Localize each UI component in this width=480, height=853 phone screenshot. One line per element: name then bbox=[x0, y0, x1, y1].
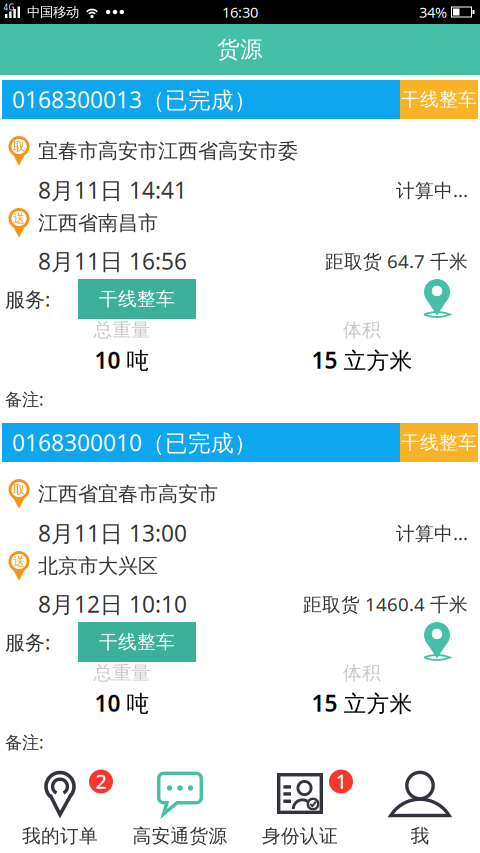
staticText: 北京市大兴区 bbox=[38, 554, 158, 578]
staticText: 体积 bbox=[343, 318, 381, 341]
staticText: 身份认证 bbox=[262, 824, 338, 847]
staticText: 8月12日 10:10 bbox=[38, 589, 187, 619]
staticText: 取 bbox=[13, 482, 25, 497]
staticText: 总重量 bbox=[93, 661, 150, 684]
staticText: 江西省宜春市高安市 bbox=[38, 482, 218, 506]
staticText: 高安通货源 bbox=[132, 824, 227, 847]
staticText: 10 吨 bbox=[94, 688, 149, 718]
staticText: 0168300010（已完成） bbox=[12, 427, 257, 457]
staticText: 送 bbox=[13, 554, 25, 569]
staticText: 备注: bbox=[5, 730, 44, 753]
staticText: 8月11日 16:56 bbox=[38, 246, 187, 276]
staticText: 干线整车 bbox=[99, 630, 175, 653]
staticText: 总重量 bbox=[93, 318, 150, 341]
staticText: 4G bbox=[3, 2, 14, 13]
staticText: 8月11日 13:00 bbox=[38, 518, 187, 548]
staticText: 干线整车 bbox=[99, 287, 175, 310]
staticText: 货源 bbox=[217, 36, 263, 63]
staticText: 34% bbox=[419, 2, 447, 22]
staticText: 我 bbox=[410, 824, 429, 847]
button[interactable]: 1 bbox=[240, 766, 360, 853]
staticText: 15 立方米 bbox=[311, 345, 412, 375]
staticText: 江西省南昌市 bbox=[38, 211, 158, 235]
button[interactable]: 高安通货源 bbox=[120, 766, 240, 853]
staticText: 计算中... bbox=[396, 178, 468, 202]
staticText: 中国移动 bbox=[27, 4, 79, 20]
staticText: 2 bbox=[95, 768, 106, 794]
staticText: 计算中... bbox=[396, 521, 468, 545]
staticText: 干线整车 bbox=[401, 88, 477, 111]
staticText: 16:30 bbox=[222, 2, 258, 22]
staticText: 15 立方米 bbox=[311, 688, 412, 718]
staticText: 干线整车 bbox=[401, 431, 477, 454]
staticText: 我的订单 bbox=[22, 824, 98, 847]
staticText: 送 bbox=[13, 211, 25, 226]
button[interactable]: 2 bbox=[0, 766, 120, 853]
staticText: 取 bbox=[13, 139, 25, 154]
staticText: 体积 bbox=[343, 661, 381, 684]
staticText: 服务: bbox=[5, 629, 50, 655]
button[interactable]: 0168300013（已完成） bbox=[0, 80, 480, 423]
staticText: 8月11日 14:41 bbox=[38, 175, 187, 205]
button[interactable]: 0168300010（已完成） bbox=[0, 423, 480, 766]
staticText: 服务: bbox=[5, 286, 50, 312]
staticText: 距取货 64.7 千米 bbox=[325, 249, 468, 273]
staticText: 1 bbox=[335, 768, 346, 794]
staticText: 10 吨 bbox=[94, 345, 149, 375]
staticText: 0168300013（已完成） bbox=[12, 84, 257, 114]
staticText: 备注: bbox=[5, 387, 44, 410]
button[interactable]: 我 bbox=[360, 766, 480, 853]
staticText: 距取货 1460.4 千米 bbox=[303, 592, 468, 616]
button[interactable]: 查看地图 bbox=[417, 279, 457, 319]
button[interactable]: 查看地图 bbox=[417, 622, 457, 662]
staticText: 宜春市高安市江西省高安市委 bbox=[38, 139, 298, 163]
